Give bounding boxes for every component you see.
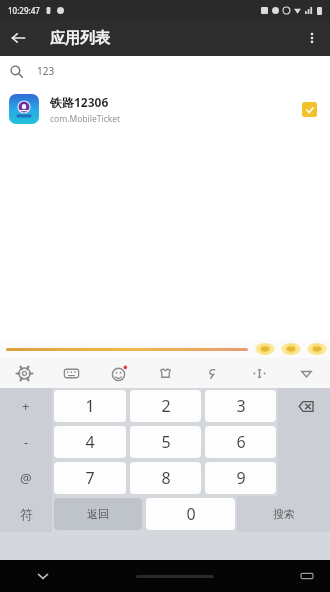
- staticText: 应用列表: [50, 29, 110, 48]
- staticText: 123: [37, 64, 55, 78]
- button[interactable]: Handwriting: [189, 358, 236, 388]
- button[interactable]: 5: [130, 426, 201, 458]
- staticText: 10:29:47: [8, 5, 40, 16]
- button[interactable]: Candidate: [304, 340, 330, 358]
- button[interactable]: 铁路12306: [0, 86, 330, 132]
- staticText: 9: [236, 467, 246, 489]
- button[interactable]: Candidate: [252, 340, 278, 358]
- button[interactable]: Selected: [296, 96, 322, 122]
- staticText: 返回: [87, 507, 109, 521]
- button[interactable]: Switch input method: [296, 565, 318, 587]
- staticText: 3: [236, 395, 246, 417]
- button[interactable]: Cursor: [236, 358, 283, 388]
- button[interactable]: 9: [205, 462, 276, 494]
- staticText: 6: [236, 431, 246, 453]
- button[interactable]: @: [0, 460, 52, 496]
- staticText: 铁路12306: [50, 94, 109, 110]
- button[interactable]: Emoji: [95, 358, 142, 388]
- staticText: 7: [85, 467, 95, 489]
- staticText: 2: [161, 395, 171, 417]
- button[interactable]: -: [0, 424, 52, 460]
- button[interactable]: +: [0, 388, 52, 424]
- button[interactable]: 8: [130, 462, 201, 494]
- button[interactable]: 2: [130, 390, 201, 422]
- button[interactable]: Theme: [142, 358, 189, 388]
- button[interactable]: 0: [146, 498, 235, 530]
- button[interactable]: Hide keyboard: [32, 565, 54, 587]
- staticText: -: [24, 433, 29, 451]
- button[interactable]: Back: [0, 20, 36, 56]
- staticText: 符: [20, 506, 33, 522]
- button[interactable]: Collapse: [283, 358, 330, 388]
- button[interactable]: 4: [54, 426, 126, 458]
- staticText: 搜索: [273, 507, 295, 521]
- button[interactable]: Backspace: [278, 388, 330, 424]
- staticText: +: [22, 397, 30, 415]
- button[interactable]: More options: [294, 20, 330, 56]
- staticText: 1: [85, 395, 95, 417]
- button[interactable]: Settings: [0, 358, 48, 388]
- staticText: 0: [186, 503, 196, 525]
- staticText: 4: [85, 431, 95, 453]
- staticText: com.MobileTicket: [50, 113, 121, 125]
- staticText: 8: [161, 467, 171, 489]
- button[interactable]: 1: [54, 390, 126, 422]
- button[interactable]: 符: [0, 496, 52, 532]
- button[interactable]: Candidate: [278, 340, 304, 358]
- button[interactable]: 返回: [54, 498, 142, 530]
- button[interactable]: [6, 348, 248, 351]
- staticText: @: [20, 469, 32, 487]
- button[interactable]: Keyboard: [48, 358, 95, 388]
- staticText: 5: [161, 431, 171, 453]
- button[interactable]: 6: [205, 426, 276, 458]
- button[interactable]: 123: [0, 56, 330, 86]
- button[interactable]: 3: [205, 390, 276, 422]
- button[interactable]: 搜索: [237, 496, 330, 532]
- button[interactable]: 7: [54, 462, 126, 494]
